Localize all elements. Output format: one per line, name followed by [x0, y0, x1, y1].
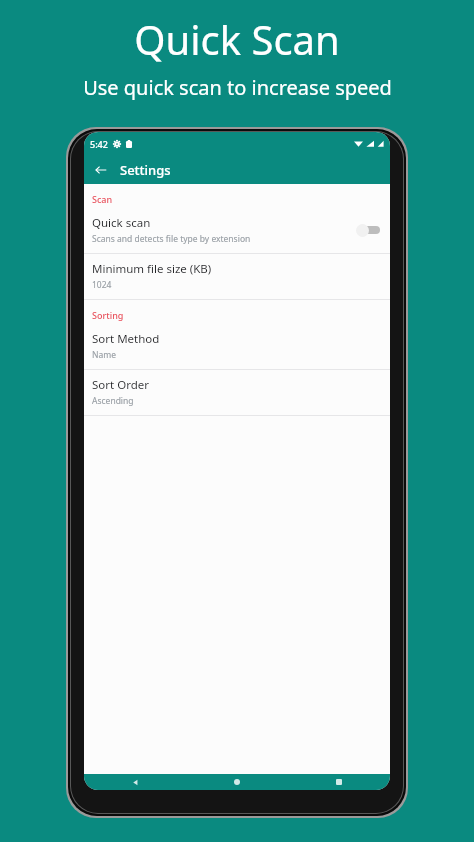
staticText: 1024: [92, 279, 112, 291]
staticText: Sort Order: [92, 377, 149, 393]
staticText: Use quick scan to increase speed: [83, 74, 392, 101]
staticText: Sort Method: [92, 331, 160, 347]
button[interactable]: Minimum file size (KB): [84, 254, 390, 299]
button[interactable]: Recent apps: [288, 774, 390, 790]
staticText: Scans and detects file type by extension: [92, 233, 251, 245]
button[interactable]: Home: [186, 774, 288, 790]
staticText: Sorting: [92, 309, 124, 321]
staticText: Settings: [120, 161, 171, 179]
staticText: Quick Scan: [134, 12, 340, 66]
staticText: 5:42: [90, 138, 108, 150]
staticText: Scan: [92, 193, 113, 205]
staticText: Ascending: [92, 395, 134, 407]
staticText: Name: [92, 349, 116, 361]
button[interactable]: Sort Method: [84, 324, 390, 369]
button[interactable]: Sort Order: [84, 370, 390, 415]
staticText: Quick scan: [92, 215, 151, 231]
button[interactable]: Back: [89, 158, 113, 182]
button[interactable]: Quick scan: [84, 208, 390, 253]
staticText: Minimum file size (KB): [92, 261, 212, 277]
button[interactable]: Back: [84, 774, 186, 790]
button[interactable]: [356, 222, 382, 238]
